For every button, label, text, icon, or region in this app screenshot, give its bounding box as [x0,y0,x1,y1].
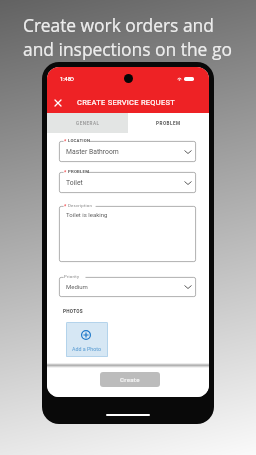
button[interactable]: Toilet is leaking [59,206,196,262]
staticText: PROBLEM [156,121,181,126]
button[interactable]: Toilet [59,172,196,193]
staticText: Create [120,376,140,383]
staticText: PHOTOS [63,309,83,315]
staticText: * [64,138,67,144]
staticText: Priority [64,274,80,279]
staticText: Add a Photo [72,346,101,352]
staticText: GENERAL [76,121,100,126]
staticText: Master Bathroom [66,148,119,156]
button[interactable]: Add a Photo [66,322,108,357]
staticText: CREATE SERVICE REQUEST [77,98,175,107]
button[interactable]: Close [50,95,65,110]
staticText: LOCATION [68,138,91,143]
staticText: PROBLEM [68,169,90,174]
staticText: Toilet is leaking [66,211,108,218]
button[interactable]: Create [100,372,160,387]
staticText: Create work orders and [23,13,214,37]
button[interactable]: Master Bathroom [59,141,196,162]
staticText: and inspections on the go [23,37,232,61]
staticText: * [64,203,67,209]
button[interactable]: Medium [59,277,196,297]
staticText: 1:48 [60,76,71,82]
button[interactable]: PROBLEM [128,113,209,133]
button[interactable]: GENERAL [47,113,128,133]
staticText: * [64,169,67,175]
staticText: Toilet [66,179,83,187]
staticText: Medium [66,283,88,290]
staticText: Description [68,203,92,208]
